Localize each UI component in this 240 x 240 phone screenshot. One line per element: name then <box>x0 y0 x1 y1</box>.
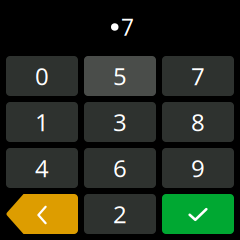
button[interactable]: 5 <box>84 56 156 96</box>
button[interactable]: 1 <box>6 102 78 142</box>
staticText: 0 <box>35 60 49 92</box>
staticText: 4 <box>35 152 49 184</box>
button[interactable]: 9 <box>162 148 234 188</box>
staticText: 7 <box>121 12 134 42</box>
button[interactable]: 7 <box>162 56 234 96</box>
button[interactable]: Delete <box>6 194 78 234</box>
staticText: 2 <box>113 198 127 230</box>
button[interactable]: 8 <box>162 102 234 142</box>
button[interactable]: Confirm <box>162 194 234 234</box>
staticText: 8 <box>191 106 205 138</box>
button[interactable]: 6 <box>84 148 156 188</box>
staticText: 1 <box>35 106 49 138</box>
button[interactable]: 4 <box>6 148 78 188</box>
button[interactable]: 2 <box>84 194 156 234</box>
staticText: 3 <box>113 106 127 138</box>
button[interactable]: 3 <box>84 102 156 142</box>
button[interactable]: 0 <box>6 56 78 96</box>
staticText: 6 <box>113 152 127 184</box>
staticText: 9 <box>191 152 205 184</box>
staticText: 5 <box>113 60 127 92</box>
staticText: 7 <box>191 60 205 92</box>
